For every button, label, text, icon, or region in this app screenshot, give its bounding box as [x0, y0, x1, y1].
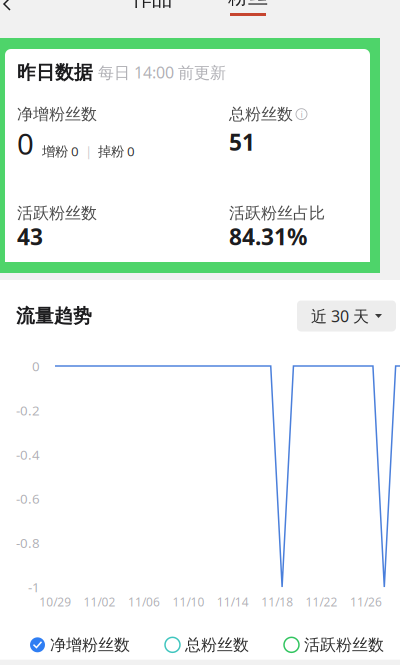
staticText: -0.2 — [16, 401, 40, 419]
staticText: 11/10 — [172, 594, 204, 610]
staticText: 活跃粉丝占比 — [229, 203, 325, 223]
button[interactable]: 粉丝 — [228, 0, 268, 16]
staticText: -1 — [28, 578, 40, 596]
staticText: 净增粉丝数 — [50, 635, 130, 655]
staticText: 增粉 0 — [42, 142, 79, 160]
button[interactable]: Back — [0, 0, 24, 18]
staticText: -0.8 — [16, 534, 40, 552]
staticText: 作品 — [132, 0, 172, 11]
staticText: 流量趋势 — [16, 304, 92, 327]
button[interactable]: 作品 — [132, 2, 172, 14]
staticText: 11/14 — [217, 594, 249, 610]
staticText: 11/22 — [306, 594, 338, 610]
staticText: 11/06 — [128, 594, 160, 610]
staticText: 11/18 — [261, 594, 293, 610]
staticText: 0 — [17, 124, 34, 163]
staticText: 总粉丝数 — [185, 635, 249, 655]
staticText: i — [300, 108, 302, 120]
staticText: 净增粉丝数 — [17, 104, 97, 124]
staticText: 每日 14:00 前更新 — [98, 62, 226, 83]
staticText: 总粉丝数 — [229, 104, 293, 124]
staticText: 掉粉 0 — [98, 142, 135, 160]
staticText: 活跃粉丝数 — [17, 203, 97, 223]
staticText: 11/26 — [350, 594, 382, 610]
staticText: 活跃粉丝数 — [304, 635, 384, 655]
staticText: 51 — [229, 127, 255, 157]
staticText: 近 30 天 — [311, 305, 369, 327]
button[interactable]: 总粉丝数 — [165, 630, 249, 660]
staticText: 10/29 — [39, 594, 71, 610]
staticText: 84.31% — [229, 221, 307, 251]
staticText: -0.4 — [16, 446, 40, 463]
staticText: 0 — [32, 357, 40, 375]
button[interactable]: 活跃粉丝数 — [284, 630, 384, 660]
staticText: 昨日数据 — [17, 61, 93, 84]
staticText: 43 — [17, 221, 43, 251]
staticText: -0.6 — [16, 490, 40, 507]
staticText: | — [85, 142, 92, 160]
staticText: 11/02 — [84, 594, 116, 610]
button[interactable]: 近 30 天 — [297, 300, 396, 331]
staticText: 粉丝 — [228, 0, 268, 9]
button[interactable]: 净增粉丝数 — [30, 630, 130, 660]
